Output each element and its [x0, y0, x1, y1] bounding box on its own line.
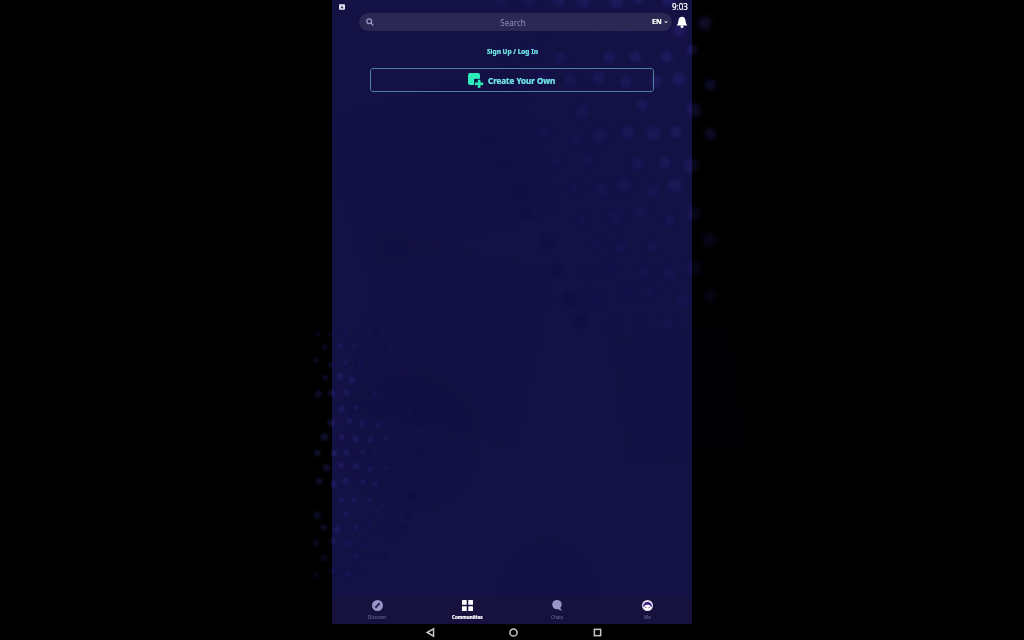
staticText: Sign Up / Log In: [487, 47, 538, 56]
button[interactable]: Communities: [422, 598, 512, 624]
staticText: EN: [652, 17, 662, 27]
staticText: Me: [644, 614, 651, 620]
staticText: Communities: [452, 614, 483, 620]
button[interactable]: Home: [506, 625, 520, 639]
button[interactable]: Sign Up / Log In: [477, 45, 548, 58]
button[interactable]: Search: [359, 13, 672, 31]
staticText: Search: [374, 17, 652, 28]
staticText: Discover: [368, 614, 387, 620]
staticText: Create Your Own: [488, 75, 556, 86]
staticText: Chats: [551, 614, 564, 620]
button[interactable]: Back: [423, 625, 437, 639]
button[interactable]: Notifications: [672, 13, 692, 31]
button[interactable]: Discover: [332, 598, 422, 624]
button[interactable]: Language EN: [652, 17, 668, 27]
button[interactable]: Create Your Own: [370, 68, 654, 92]
button[interactable]: Recents: [590, 625, 604, 639]
staticText: 9:03: [672, 1, 688, 12]
button[interactable]: Chats: [512, 598, 602, 624]
button[interactable]: Me: [602, 598, 692, 624]
